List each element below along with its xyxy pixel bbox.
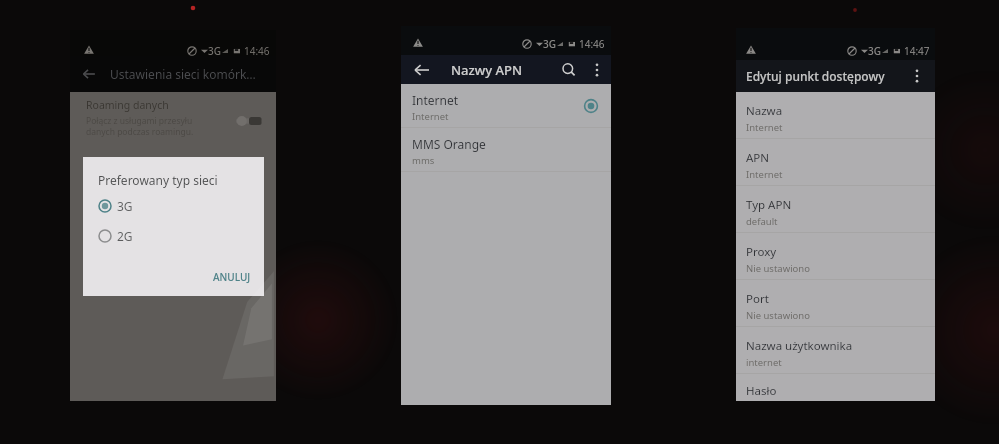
staticText: Nazwa [746, 103, 783, 119]
button[interactable]: 2G [83, 221, 264, 251]
button[interactable]: Back [409, 56, 437, 84]
button[interactable]: More options [904, 63, 930, 89]
button[interactable]: Data roaming toggle [234, 114, 264, 128]
button[interactable]: Typ APN [736, 186, 935, 232]
staticText: Internet [412, 110, 449, 123]
staticText: 3G [208, 44, 221, 58]
staticText: Internet [746, 168, 783, 181]
staticText: 2G [117, 228, 133, 244]
button[interactable]: Internet [401, 84, 611, 127]
staticText: Nazwa użytkownika [746, 338, 853, 354]
staticText: Typ APN [746, 197, 792, 213]
staticText: APN [746, 150, 770, 166]
button[interactable]: Port [736, 280, 935, 326]
button[interactable]: Search [556, 57, 582, 83]
button[interactable]: Nazwa użytkownika [736, 327, 935, 373]
staticText: 3G [543, 37, 556, 51]
staticText: Roaming danych [86, 98, 169, 112]
button[interactable]: Nazwa [736, 92, 935, 138]
staticText: Internet [412, 92, 459, 108]
button[interactable]: ANULUJ [209, 267, 255, 287]
staticText: MMS Orange [412, 136, 486, 152]
staticText: Nie ustawiono [746, 262, 810, 275]
staticText: Port [746, 291, 769, 307]
staticText: Ustawienia sieci komórk… [110, 66, 256, 82]
staticText: Edytuj punkt dostępowy [746, 68, 885, 84]
button[interactable]: MMS Orange [401, 128, 611, 171]
staticText: Hasło [746, 383, 777, 399]
staticText: internet [746, 356, 782, 369]
button[interactable]: 3G [83, 191, 264, 221]
button[interactable]: Back [76, 60, 104, 88]
button[interactable]: APN [736, 139, 935, 185]
staticText: default [746, 215, 778, 228]
staticText: 14:46 [244, 44, 270, 58]
staticText: Internet [746, 121, 783, 134]
staticText: 3G [117, 198, 133, 214]
staticText: Preferowany typ sieci [98, 172, 218, 188]
staticText: mms [412, 154, 435, 167]
button[interactable]: More options [584, 57, 610, 83]
staticText: ANULUJ [213, 270, 251, 284]
staticText: 14:46 [579, 37, 605, 51]
staticText: Proxy [746, 244, 777, 260]
button[interactable]: Proxy [736, 233, 935, 279]
button[interactable]: Hasło [736, 374, 935, 401]
staticText: 3G [868, 44, 881, 58]
staticText: Nie ustawiono [746, 309, 810, 322]
staticText: Nazwy APN [451, 61, 522, 79]
staticText: Połącz z usługami przesyłu danych podcza… [86, 115, 194, 137]
staticText: 14:47 [904, 44, 930, 58]
